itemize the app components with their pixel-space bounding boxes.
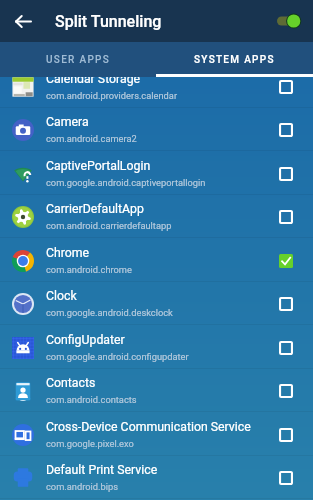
button[interactable]: Contacts xyxy=(0,369,313,412)
staticText: Cross-Device Communication Service xyxy=(46,420,251,434)
staticText: USER APPS xyxy=(46,54,111,66)
button[interactable]: SYSTEM APPS xyxy=(156,42,313,77)
button[interactable]: Chrome xyxy=(0,239,313,282)
staticText: com.android.camera2 xyxy=(46,133,137,144)
staticText: Split Tunneling xyxy=(55,12,162,31)
staticText: com.google.pixel.exo xyxy=(46,438,134,449)
button[interactable]: Default Print Service xyxy=(0,456,313,499)
staticText: ConfigUpdater xyxy=(46,333,125,347)
staticText: com.android.carrierdefaultapp xyxy=(46,220,172,231)
button[interactable]: Camera xyxy=(0,108,313,151)
button[interactable]: ConfigUpdater xyxy=(0,326,313,369)
button[interactable]: Cross-Device Communication Service xyxy=(0,413,313,456)
button[interactable]: Back xyxy=(0,0,45,42)
staticText: com.android.chrome xyxy=(46,264,132,275)
staticText: Clock xyxy=(46,289,77,303)
button[interactable]: Calendar Storage xyxy=(0,65,313,108)
staticText: com.android.providers.calendar xyxy=(46,90,178,101)
button[interactable]: CaptivePortalLogin xyxy=(0,152,313,195)
button[interactable]: Clock xyxy=(0,282,313,325)
button[interactable]: Toggle split tunneling xyxy=(265,0,313,42)
staticText: com.google.android.deskclock xyxy=(46,307,173,318)
staticText: Calendar Storage xyxy=(46,72,141,86)
staticText: SYSTEM APPS xyxy=(194,54,275,66)
staticText: CarrierDefaultApp xyxy=(46,202,144,216)
staticText: Chrome xyxy=(46,246,90,260)
staticText: com.android.contacts xyxy=(46,394,137,405)
staticText: CaptivePortalLogin xyxy=(46,159,151,173)
staticText: com.android.bips xyxy=(46,481,119,492)
staticText: com.google.android.captiveportallogin xyxy=(46,177,206,188)
button[interactable]: USER APPS xyxy=(0,42,156,77)
staticText: Default Print Service xyxy=(46,463,158,477)
staticText: Camera xyxy=(46,115,89,129)
button[interactable]: CarrierDefaultApp xyxy=(0,195,313,238)
staticText: Contacts xyxy=(46,376,96,390)
staticText: com.google.android.configupdater xyxy=(46,351,189,362)
